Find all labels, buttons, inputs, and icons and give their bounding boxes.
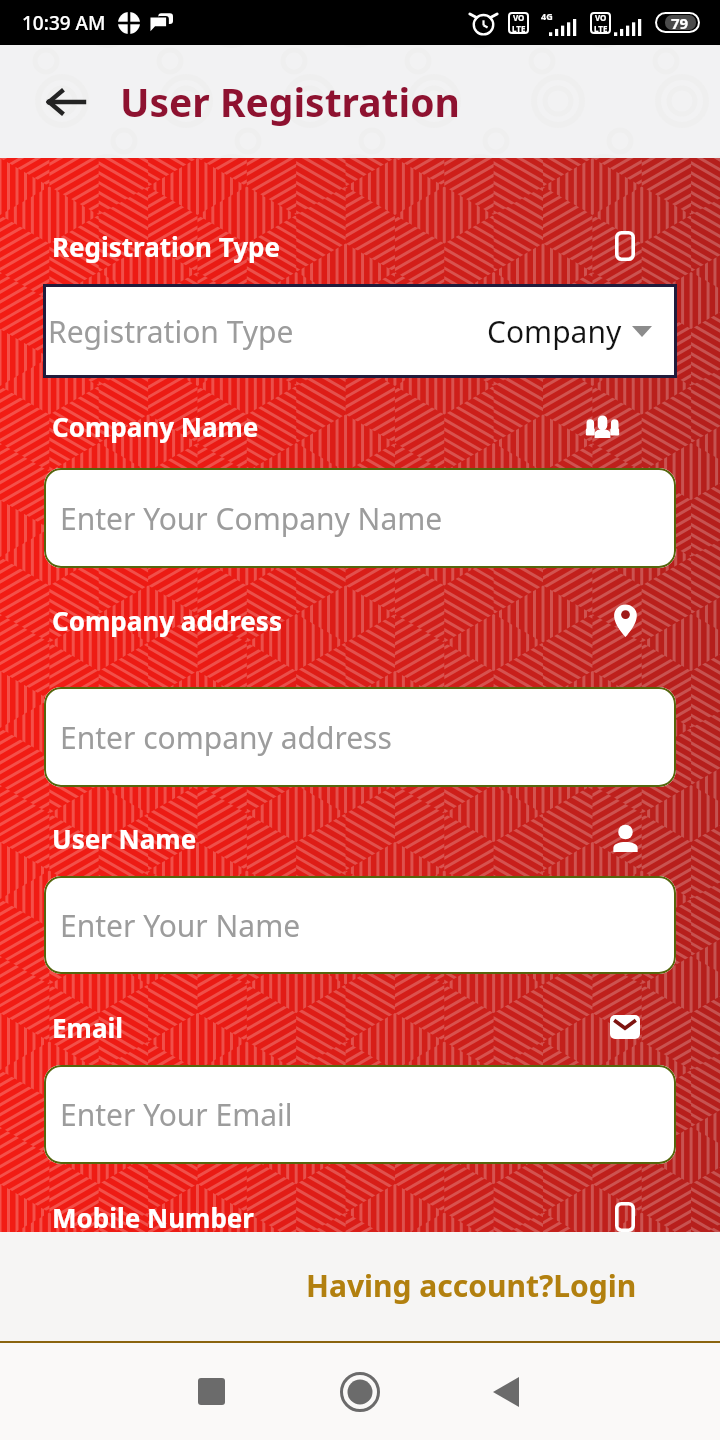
staticText: Email xyxy=(52,1010,124,1045)
staticText: 10:39 AM xyxy=(22,10,106,36)
button[interactable]: Back xyxy=(463,1343,549,1440)
button[interactable]: Enter Your Company Name xyxy=(44,468,676,568)
button[interactable]: Having account?Login xyxy=(306,1265,637,1306)
button[interactable]: Back xyxy=(36,73,94,131)
staticText: Company xyxy=(487,311,622,352)
staticText: 79 xyxy=(671,13,689,33)
staticText: VO xyxy=(513,12,525,23)
staticText: Having account?Login xyxy=(306,1265,637,1306)
staticText: Mobile Number xyxy=(52,1200,254,1232)
button[interactable]: Home xyxy=(317,1343,403,1440)
staticText: Enter Your Email xyxy=(60,1094,293,1135)
staticText: Enter Your Company Name xyxy=(60,498,443,539)
button[interactable]: Enter Your Name xyxy=(44,876,676,974)
staticText: User Registration xyxy=(120,75,460,128)
staticText: 4G xyxy=(541,10,553,22)
staticText: Registration Type xyxy=(48,311,294,352)
staticText: Company Name xyxy=(52,409,259,444)
staticText: Enter Your Name xyxy=(60,905,301,946)
button[interactable]: Recent apps xyxy=(168,1343,254,1440)
staticText: Company address xyxy=(52,603,282,638)
staticText: Enter company address xyxy=(60,717,392,758)
staticText: VO xyxy=(595,12,607,23)
staticText: LTE xyxy=(594,23,608,34)
staticText: LTE xyxy=(512,23,526,34)
staticText: Registration Type xyxy=(52,229,281,264)
button[interactable]: Enter Your Email xyxy=(44,1065,676,1164)
button[interactable]: Registration Type xyxy=(43,284,677,378)
button[interactable]: Enter company address xyxy=(44,687,676,787)
staticText: User Name xyxy=(52,821,197,856)
